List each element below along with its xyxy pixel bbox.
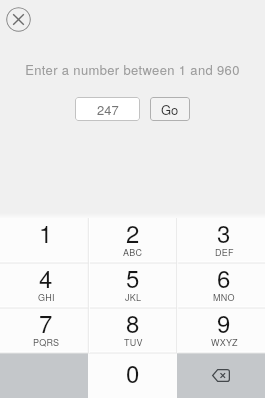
button[interactable]: 7: [2, 308, 90, 353]
button[interactable]: 9: [180, 308, 265, 353]
button[interactable]: 5: [89, 263, 177, 308]
button[interactable]: 6: [180, 263, 265, 308]
staticText: ABC: [123, 246, 143, 259]
staticText: 3: [217, 215, 231, 249]
staticText: WXYZ: [211, 336, 238, 349]
button[interactable]: Go: [150, 97, 190, 121]
staticText: PQRS: [33, 336, 60, 349]
staticText: 247: [97, 100, 119, 119]
staticText: 7: [39, 305, 53, 339]
staticText: MNO: [213, 291, 235, 304]
button[interactable]: 3: [180, 218, 265, 263]
button[interactable]: 247: [75, 97, 140, 121]
staticText: 0: [126, 355, 140, 389]
staticText: JKL: [125, 291, 142, 304]
button[interactable]: 4: [2, 263, 90, 308]
staticText: 9: [217, 305, 231, 339]
button[interactable]: 8: [89, 308, 177, 353]
staticText: Enter a number between 1 and 960: [0, 60, 265, 79]
button[interactable]: Backspace: [177, 353, 265, 398]
button[interactable]: 0: [89, 353, 177, 398]
button[interactable]: 2: [89, 218, 177, 263]
button[interactable]: Close: [6, 7, 31, 32]
staticText: 8: [126, 305, 140, 339]
staticText: DEF: [215, 246, 234, 259]
staticText: 1: [39, 215, 53, 249]
button[interactable]: 1: [2, 218, 90, 263]
staticText: GHI: [38, 291, 55, 304]
staticText: 6: [217, 260, 231, 294]
staticText: 5: [126, 260, 140, 294]
staticText: 2: [126, 215, 140, 249]
staticText: 4: [39, 260, 53, 294]
staticText: Go: [161, 100, 179, 119]
staticText: TUV: [124, 336, 143, 349]
